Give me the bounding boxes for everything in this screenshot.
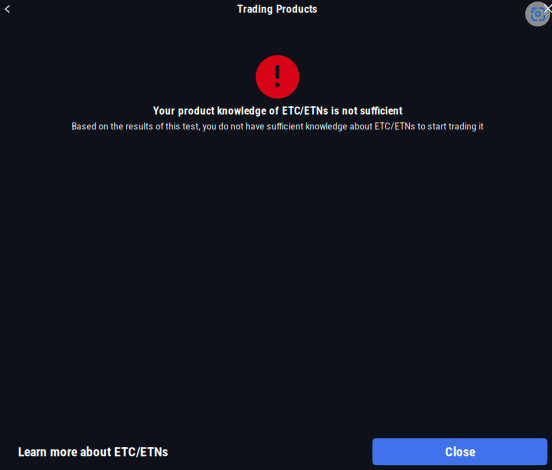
button[interactable]: Dismiss	[540, 0, 552, 16]
staticText: Trading Products	[237, 2, 317, 16]
button[interactable]: Close	[372, 438, 547, 465]
button[interactable]: Scan document	[525, 1, 550, 26]
button[interactable]: Learn more about ETC/ETNs	[18, 438, 168, 465]
staticText: Learn more about ETC/ETNs	[18, 444, 168, 459]
staticText: Close	[445, 444, 475, 459]
button[interactable]: Back	[0, 0, 18, 20]
staticText: Based on the results of this test, you d…	[71, 120, 483, 132]
staticText: Your product knowledge of ETC/ETNs is no…	[153, 104, 402, 117]
